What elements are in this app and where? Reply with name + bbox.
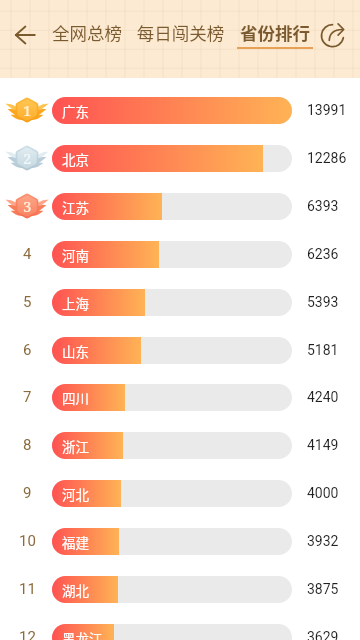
button[interactable]: 7 xyxy=(0,373,360,421)
button[interactable]: 4 xyxy=(0,230,360,278)
staticText: 广东 xyxy=(62,101,89,121)
staticText: 全网总榜 xyxy=(50,20,124,45)
button[interactable]: 2 xyxy=(0,134,360,182)
staticText: 四川 xyxy=(62,388,89,408)
staticText: 4 xyxy=(23,245,32,263)
staticText: 黑龙江 xyxy=(62,628,103,640)
staticText: 12 xyxy=(19,628,36,640)
button[interactable]: 10 xyxy=(0,517,360,565)
button[interactable]: 12 xyxy=(0,613,360,640)
staticText: 省份排行 xyxy=(237,20,313,45)
staticText: 7 xyxy=(23,388,32,406)
staticText: 河南 xyxy=(62,245,89,265)
button[interactable]: Share xyxy=(313,14,352,55)
button[interactable]: 5 xyxy=(0,278,360,326)
staticText: 福建 xyxy=(62,532,89,552)
staticText: 山东 xyxy=(62,341,89,361)
staticText: 11 xyxy=(19,580,36,598)
staticText: 12286 xyxy=(307,150,347,166)
staticText: 每日闯关榜 xyxy=(134,20,227,45)
button[interactable]: 3 xyxy=(0,182,360,230)
staticText: 8 xyxy=(23,436,32,454)
button[interactable]: 6 xyxy=(0,326,360,374)
button[interactable]: 9 xyxy=(0,469,360,517)
staticText: 5 xyxy=(23,293,32,311)
button[interactable]: Back xyxy=(2,13,47,57)
staticText: 1 xyxy=(23,100,32,120)
staticText: 河北 xyxy=(62,484,89,504)
staticText: 3875 xyxy=(307,581,339,597)
button[interactable]: 省份排行 xyxy=(237,20,313,54)
button[interactable]: 每日闯关榜 xyxy=(134,20,227,54)
staticText: 10 xyxy=(19,532,36,550)
staticText: 6236 xyxy=(307,246,339,262)
staticText: 江苏 xyxy=(62,197,89,217)
staticText: 浙江 xyxy=(62,436,89,456)
staticText: 2 xyxy=(23,148,32,168)
staticText: 6 xyxy=(23,341,32,359)
staticText: 5393 xyxy=(307,294,339,310)
button[interactable]: 11 xyxy=(0,565,360,613)
staticText: 3932 xyxy=(307,533,339,549)
staticText: 3629 xyxy=(307,629,339,640)
staticText: 4240 xyxy=(307,389,339,405)
staticText: 4000 xyxy=(307,485,339,501)
staticText: 6393 xyxy=(307,198,339,214)
staticText: 13991 xyxy=(307,102,347,118)
staticText: 湖北 xyxy=(62,580,89,600)
staticText: 5181 xyxy=(307,342,339,358)
staticText: 北京 xyxy=(62,149,89,169)
staticText: 4149 xyxy=(307,437,339,453)
staticText: 上海 xyxy=(62,293,89,313)
button[interactable]: 全网总榜 xyxy=(50,20,124,54)
button[interactable]: 1 xyxy=(0,86,360,134)
button[interactable]: 8 xyxy=(0,421,360,469)
staticText: 9 xyxy=(23,484,32,502)
staticText: 3 xyxy=(23,196,32,216)
